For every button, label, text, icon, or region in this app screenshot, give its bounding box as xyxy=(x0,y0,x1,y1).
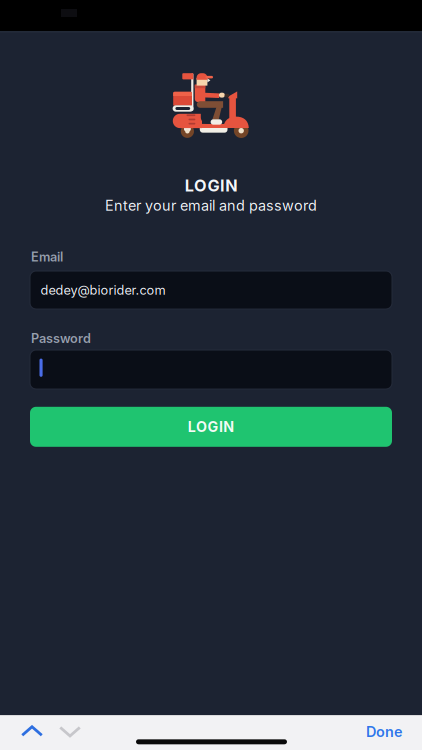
staticText: Enter your email and password xyxy=(105,197,317,214)
staticText: Password xyxy=(31,331,91,346)
staticText: Done xyxy=(366,723,403,740)
staticText: dedey@biorider.com xyxy=(40,282,165,298)
button[interactable]: Password xyxy=(30,350,392,389)
staticText: LOGIN xyxy=(188,418,234,435)
button[interactable]: Next field xyxy=(58,723,82,740)
button[interactable]: LOGIN xyxy=(30,407,392,447)
button[interactable]: Previous field xyxy=(20,722,44,739)
button[interactable]: Done xyxy=(366,723,403,740)
staticText: Email xyxy=(31,249,63,265)
staticText: LOGIN xyxy=(185,176,237,195)
button[interactable]: dedey@biorider.com xyxy=(30,271,392,309)
